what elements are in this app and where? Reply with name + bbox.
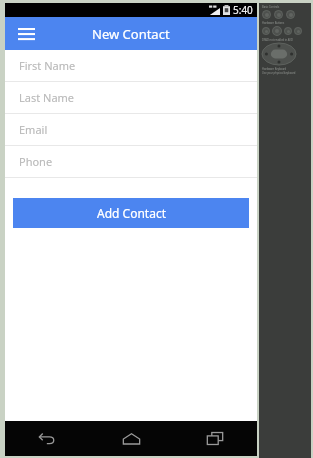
staticText: Add Contact xyxy=(97,205,166,221)
button[interactable]: Open navigation menu xyxy=(13,21,39,47)
button[interactable]: Phone xyxy=(5,146,257,178)
button[interactable]: Emulator control xyxy=(286,10,295,19)
button[interactable]: Emulator control xyxy=(274,10,283,19)
button[interactable]: Emulator control xyxy=(262,10,271,19)
staticText: First Name xyxy=(19,58,76,73)
button[interactable]: Emulator control xyxy=(272,26,282,36)
button[interactable]: First Name xyxy=(5,50,257,82)
button[interactable]: Add Contact xyxy=(13,198,249,228)
button[interactable]: Home xyxy=(89,421,173,456)
staticText: Use your physical keyboard xyxy=(262,71,296,75)
staticText: Phone xyxy=(19,154,53,169)
button[interactable]: D-pad xyxy=(262,43,296,65)
staticText: Hardware Keyboard xyxy=(262,67,287,71)
staticText: Email xyxy=(19,122,48,137)
button[interactable]: Emulator control xyxy=(262,27,270,35)
staticText: Basic Controls xyxy=(262,5,280,9)
staticText: Last Name xyxy=(19,90,75,105)
staticText: 5:40 xyxy=(233,3,253,17)
button[interactable]: Emulator control xyxy=(294,27,302,35)
button[interactable]: Email xyxy=(5,114,257,146)
staticText: Hardware Buttons xyxy=(262,21,285,25)
button[interactable]: Emulator control xyxy=(284,27,292,35)
button[interactable]: Recent apps xyxy=(173,421,257,456)
button[interactable]: Last Name xyxy=(5,82,257,114)
button[interactable]: Back xyxy=(5,421,89,456)
staticText: New Contact xyxy=(92,25,170,43)
staticText: DPAD not enabled in AVD xyxy=(262,38,293,42)
